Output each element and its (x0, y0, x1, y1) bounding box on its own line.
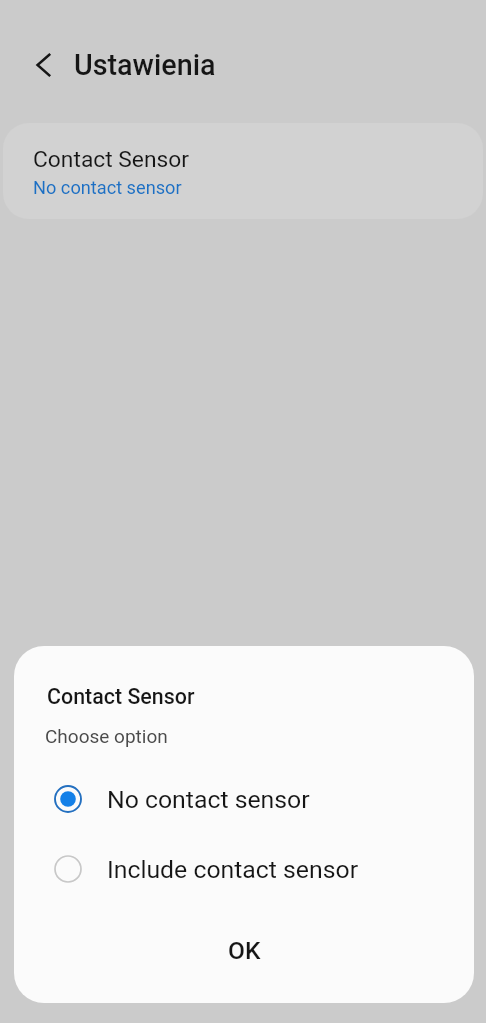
staticText: Ustawienia (74, 48, 216, 82)
staticText: No contact sensor (107, 785, 310, 814)
button[interactable]: Contact Sensor (3, 123, 483, 219)
staticText: Choose option (45, 725, 168, 747)
staticText: Contact Sensor (47, 684, 195, 709)
button[interactable]: Back (24, 43, 68, 87)
staticText: Include contact sensor (107, 855, 359, 884)
button[interactable]: No contact sensor (14, 764, 474, 834)
button[interactable]: OK (14, 918, 474, 982)
staticText: Contact Sensor (33, 146, 190, 173)
button[interactable]: Include contact sensor (14, 834, 474, 904)
staticText: OK (228, 936, 261, 965)
staticText: No contact sensor (33, 177, 182, 198)
